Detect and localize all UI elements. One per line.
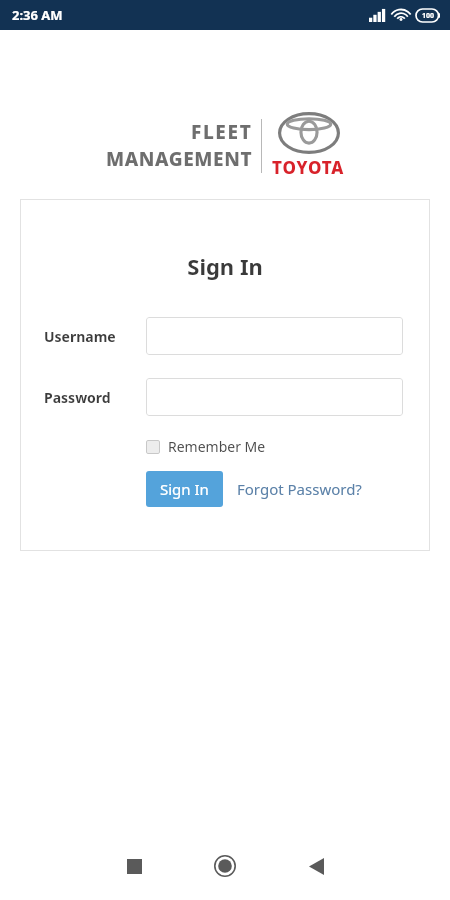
staticText: 100 [422, 11, 435, 21]
button[interactable]: Sign In [146, 471, 223, 507]
staticText: Remember Me [168, 437, 266, 456]
staticText: 2:36 AM [12, 6, 63, 24]
button[interactable] [146, 378, 403, 416]
staticText: Password [44, 388, 111, 407]
button[interactable]: Forgot Password? [237, 475, 362, 503]
staticText: Sign In [160, 479, 209, 499]
staticText: FLEET [191, 119, 253, 145]
button[interactable]: Back [288, 838, 344, 894]
staticText: TOYOTA [272, 156, 345, 179]
staticText: MANAGEMENT [106, 146, 253, 172]
staticText: Sign In [20, 251, 430, 281]
button[interactable] [146, 317, 403, 355]
staticText: Forgot Password? [237, 479, 362, 499]
button[interactable]: Home [197, 838, 253, 894]
button[interactable]: Recent apps [106, 838, 162, 894]
button[interactable]: Remember Me [146, 437, 266, 456]
staticText: Username [44, 327, 116, 346]
